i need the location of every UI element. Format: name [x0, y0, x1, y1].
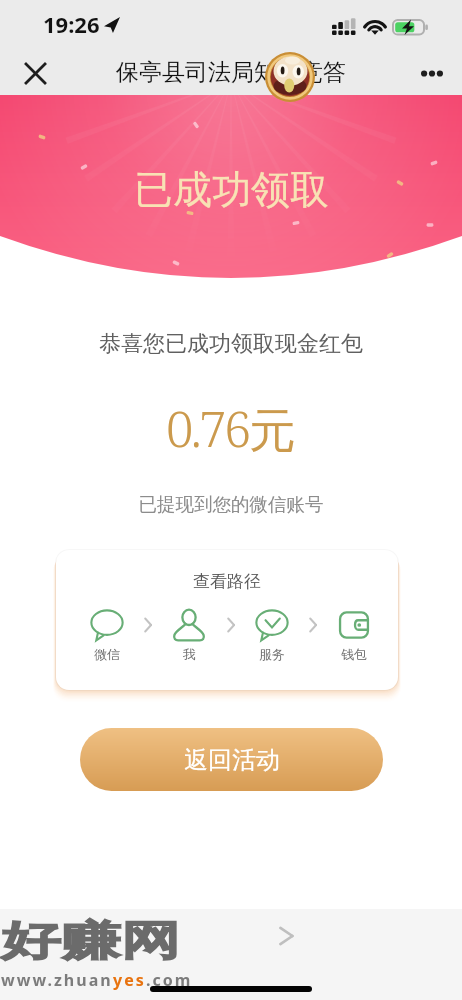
- staticText: yes: [113, 969, 146, 991]
- staticText: 返回活动: [184, 745, 280, 775]
- button[interactable]: 返回活动: [80, 728, 383, 791]
- staticText: 保亭县司法局知识竞答: [116, 58, 346, 87]
- staticText: 我: [183, 646, 196, 662]
- staticText: www.zhuan: [1, 969, 113, 991]
- staticText: 服务: [259, 646, 285, 662]
- button[interactable]: 钱包: [331, 608, 377, 662]
- staticText: 恭喜您已成功领取现金红包: [0, 330, 462, 358]
- staticText: 钱包: [341, 646, 367, 662]
- staticText: .com: [146, 969, 193, 991]
- button[interactable]: 服务: [249, 608, 295, 662]
- button[interactable]: 查看路径: [56, 550, 398, 690]
- button[interactable]: More options: [415, 56, 449, 90]
- staticText: 元: [249, 402, 296, 461]
- staticText: 微信: [94, 646, 120, 662]
- staticText: 0.76: [166, 395, 249, 462]
- staticText: 已提现到您的微信账号: [0, 493, 462, 516]
- staticText: 已成功领取: [134, 165, 329, 214]
- button[interactable]: Close: [18, 56, 52, 90]
- staticText: 19:26: [43, 9, 100, 39]
- button[interactable]: Next: [272, 922, 300, 950]
- staticText: 查看路径: [193, 571, 261, 592]
- button[interactable]: 微信: [84, 608, 130, 662]
- button[interactable]: 我: [166, 608, 212, 662]
- staticText: 好赚网: [1, 916, 181, 968]
